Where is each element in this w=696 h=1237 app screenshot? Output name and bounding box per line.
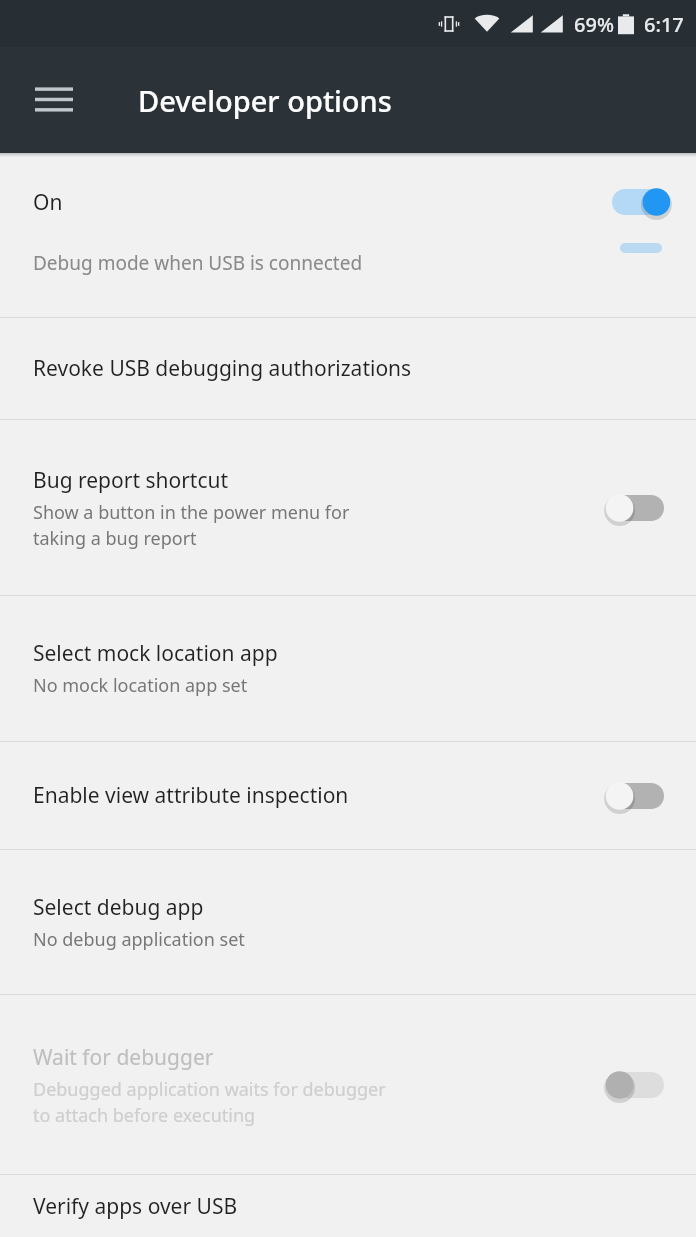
button[interactable]: Enable view attribute inspection: [0, 742, 696, 849]
staticText: Bug report shortcut: [33, 466, 229, 495]
staticText: 6:17: [644, 11, 684, 38]
staticText: Verify apps over USB: [33, 1192, 238, 1221]
staticText: No debug application set: [33, 927, 245, 952]
staticText: Enable view attribute inspection: [33, 781, 349, 810]
staticText: Show a button in the power menu for taki…: [33, 500, 350, 550]
button[interactable]: Select debug app: [0, 850, 696, 994]
staticText: Select mock location app: [33, 639, 278, 668]
button[interactable]: On: [0, 157, 696, 247]
button[interactable]: Verify apps over USB: [0, 1175, 696, 1237]
staticText: Revoke USB debugging authorizations: [33, 354, 412, 383]
button[interactable]: Open navigation menu: [22, 68, 86, 132]
staticText: 69%: [574, 11, 614, 38]
button[interactable]: Select mock location app: [0, 596, 696, 741]
button[interactable]: Bug report shortcut: [0, 420, 696, 595]
staticText: Debug mode when USB is connected: [33, 250, 363, 276]
button[interactable]: Wait for debugger: [0, 995, 696, 1174]
staticText: On: [33, 188, 63, 217]
staticText: No mock location app set: [33, 673, 248, 698]
staticText: Debugged application waits for debugger …: [33, 1077, 386, 1127]
staticText: Developer options: [138, 81, 392, 120]
staticText: Select debug app: [33, 893, 204, 922]
staticText: Wait for debugger: [33, 1043, 214, 1072]
button[interactable]: Revoke USB debugging authorizations: [0, 318, 696, 419]
